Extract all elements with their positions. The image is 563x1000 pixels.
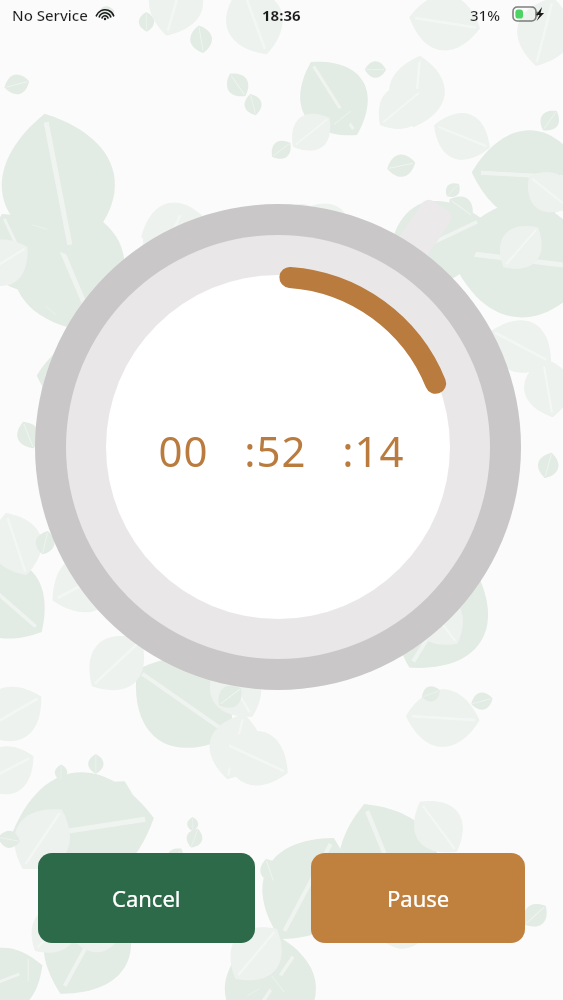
- staticText: 18:36: [262, 5, 301, 25]
- button[interactable]: Pause: [311, 853, 525, 943]
- staticText: 31%: [470, 5, 500, 25]
- staticText: 00 :52 :14: [0, 422, 563, 1000]
- staticText: Pause: [387, 883, 450, 913]
- staticText: No Service: [12, 5, 88, 25]
- staticText: Cancel: [112, 883, 181, 913]
- button[interactable]: Cancel: [38, 853, 255, 943]
